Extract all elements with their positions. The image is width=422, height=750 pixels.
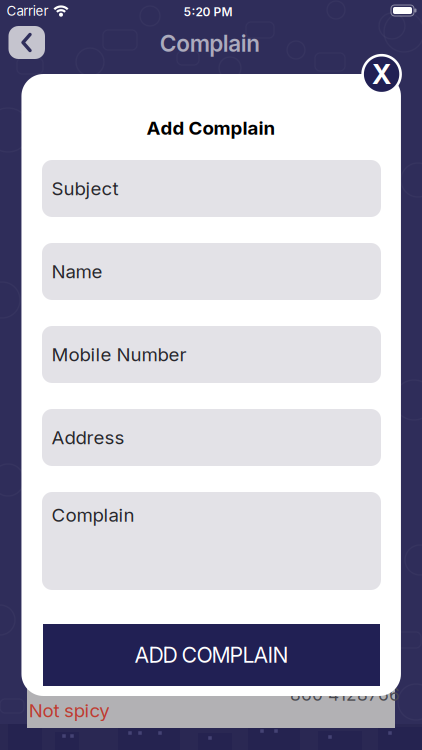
- button[interactable]: Mobile Number: [42, 326, 381, 383]
- staticText: Name: [51, 260, 102, 282]
- button[interactable]: Complain: [42, 492, 381, 590]
- staticText: Carrier: [7, 3, 48, 19]
- staticText: Not spicy: [29, 699, 109, 721]
- staticText: Add Complain: [146, 117, 275, 139]
- staticText: Address: [51, 426, 124, 448]
- staticText: Subject: [51, 177, 118, 199]
- staticText: 5:20 PM: [183, 5, 232, 19]
- button[interactable]: ADD COMPLAIN: [43, 624, 380, 686]
- staticText: Mobile Number: [51, 343, 186, 365]
- staticText: ADD COMPLAIN: [134, 642, 288, 668]
- staticText: X: [372, 58, 391, 90]
- button[interactable]: Back: [8, 26, 45, 59]
- button[interactable]: Address: [42, 409, 381, 466]
- staticText: Complain: [51, 504, 134, 526]
- staticText: 860 4128766: [290, 684, 400, 705]
- staticText: Complain: [160, 30, 260, 57]
- button[interactable]: Name: [42, 243, 381, 300]
- button[interactable]: Close: [363, 55, 401, 93]
- button[interactable]: Subject: [42, 160, 381, 217]
